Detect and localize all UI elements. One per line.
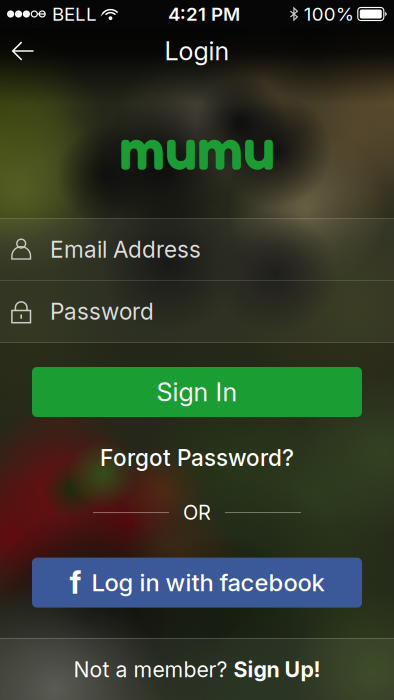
staticText: Not a member?	[73, 657, 233, 682]
button[interactable]: Password	[0, 281, 394, 342]
staticText: OR	[183, 500, 211, 525]
button[interactable]: Not a member?	[0, 639, 394, 700]
staticText: Sign Up!	[233, 657, 320, 682]
staticText: Password	[50, 298, 154, 325]
staticText: Sign In	[156, 377, 237, 407]
button[interactable]: f	[32, 558, 362, 608]
staticText: 4:21 PM	[168, 3, 240, 25]
button[interactable]: Forgot Password?	[86, 437, 308, 478]
staticText: 100%	[304, 3, 354, 25]
staticText: Email Address	[50, 236, 201, 263]
staticText: BELL	[52, 3, 97, 25]
button[interactable]: Sign In	[32, 367, 362, 417]
button[interactable]: Email Address	[0, 219, 394, 280]
staticText: Login	[164, 36, 229, 66]
staticText: Forgot Password?	[100, 444, 294, 471]
staticText: mumu	[119, 113, 275, 182]
staticText: f	[69, 564, 81, 601]
button[interactable]: Back	[0, 29, 46, 73]
staticText: Log in with facebook	[91, 568, 324, 597]
